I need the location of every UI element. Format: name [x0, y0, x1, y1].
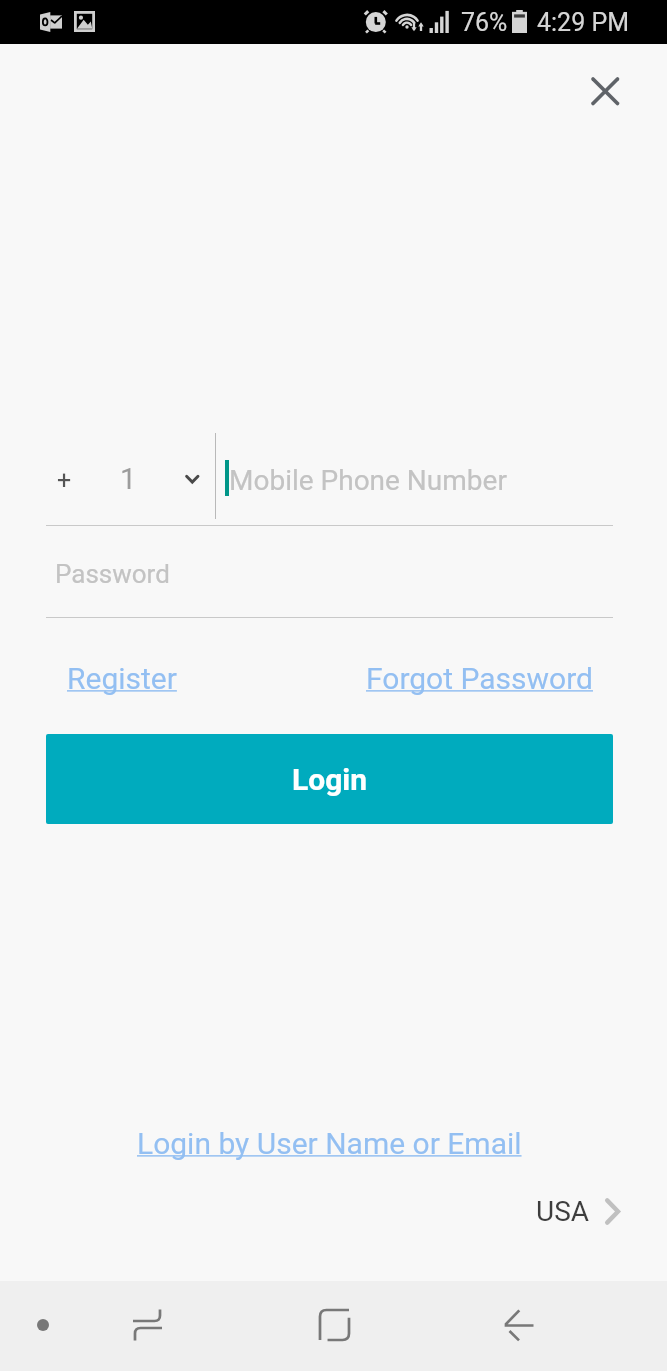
button[interactable]: Select country USA [524, 1186, 639, 1236]
button[interactable]: Close [570, 57, 638, 125]
button[interactable]: Forgot Password [350, 649, 577, 707]
button[interactable]: Login [46, 734, 613, 824]
staticText: Password [55, 559, 170, 589]
staticText: USA [536, 1195, 590, 1228]
button[interactable]: Country code [46, 433, 215, 525]
staticText: Mobile Phone Number [229, 464, 507, 497]
staticText: Login [292, 762, 368, 797]
button[interactable]: Back [490, 1295, 550, 1355]
staticText: 4:29 PM [537, 8, 630, 37]
button[interactable]: Recent apps [118, 1295, 178, 1355]
staticText: Forgot Password [366, 661, 593, 696]
button[interactable]: Mobile Phone Number [216, 433, 613, 525]
button[interactable]: Home [304, 1295, 364, 1355]
staticText: 76% [461, 8, 508, 37]
button[interactable]: Login by User Name or Email [141, 1114, 526, 1172]
staticText: 1 [120, 462, 137, 496]
button[interactable]: Menu [13, 1295, 73, 1355]
staticText: Register [67, 661, 177, 696]
button[interactable]: Password [46, 526, 613, 617]
button[interactable]: Register [51, 649, 161, 707]
staticText: + [57, 466, 72, 495]
staticText: Login by User Name or Email [137, 1126, 522, 1161]
